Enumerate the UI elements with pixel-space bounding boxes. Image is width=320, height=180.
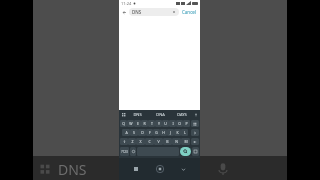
button[interactable]: E <box>134 120 141 127</box>
button[interactable]: R <box>141 120 148 127</box>
button[interactable]: U <box>162 120 169 127</box>
staticText: P <box>185 121 188 126</box>
other: Microphone <box>214 160 232 178</box>
button[interactable]: Numbers <box>191 120 199 127</box>
staticText: Z <box>131 139 134 144</box>
button[interactable]: Cancel <box>181 9 198 15</box>
button[interactable]: Emoji <box>130 147 136 156</box>
button[interactable]: H <box>160 129 167 136</box>
staticText: E <box>137 121 139 126</box>
button[interactable]: Next <box>191 129 199 136</box>
button[interactable]: Q <box>120 120 127 127</box>
staticText: D <box>141 130 144 135</box>
staticText: C <box>148 139 151 144</box>
staticText: DNS <box>58 160 87 179</box>
staticText: B <box>166 139 169 144</box>
staticText: K <box>176 130 179 135</box>
staticText: I <box>172 121 174 126</box>
button[interactable]: Back <box>178 164 188 174</box>
staticText: Y <box>158 121 160 126</box>
button[interactable]: Home <box>154 163 166 175</box>
staticText: DNS <box>133 112 142 117</box>
staticText: N <box>175 139 178 144</box>
button[interactable]: V <box>154 138 163 145</box>
staticText: 11:24 <box>121 1 132 6</box>
staticText: M <box>184 139 188 144</box>
button[interactable]: Y <box>155 120 162 127</box>
button[interactable]: ⇧ <box>120 138 128 145</box>
button[interactable]: Resize keyboard <box>192 147 199 156</box>
button[interactable]: J <box>167 129 174 136</box>
button[interactable]: F <box>146 129 153 136</box>
staticText: O <box>178 121 181 126</box>
button[interactable]: G <box>153 129 160 136</box>
staticText: A <box>125 130 128 135</box>
button[interactable]: M <box>181 138 190 145</box>
button[interactable]: DNS <box>126 110 149 119</box>
staticText: DNA <box>156 112 165 117</box>
staticText: ?123 <box>121 150 128 154</box>
button[interactable]: Search <box>180 147 191 156</box>
staticText: DAYS <box>177 112 187 117</box>
button[interactable]: B <box>163 138 172 145</box>
staticText: R <box>143 121 146 126</box>
staticText: H <box>162 130 165 135</box>
button[interactable]: S <box>130 129 138 136</box>
staticText: S <box>133 130 135 135</box>
button[interactable]: A <box>122 129 130 136</box>
button[interactable]: DAYS <box>171 110 193 119</box>
staticText: DNS <box>132 9 142 15</box>
button[interactable]: N <box>172 138 181 145</box>
staticText: G <box>155 130 158 135</box>
staticText: J <box>170 130 171 135</box>
button[interactable]: C <box>145 138 154 145</box>
button[interactable]: T <box>148 120 155 127</box>
button[interactable]: L <box>181 129 188 136</box>
button[interactable]: W <box>127 120 134 127</box>
button[interactable]: I <box>169 120 176 127</box>
button[interactable]: O <box>176 120 183 127</box>
button[interactable]: Back <box>121 9 128 16</box>
staticText: X <box>139 139 142 144</box>
staticText: U <box>164 121 167 126</box>
button[interactable]: D <box>138 129 146 136</box>
button[interactable]: X <box>136 138 145 145</box>
button[interactable]: P <box>183 120 190 127</box>
button[interactable]: Voice input <box>193 112 198 117</box>
button[interactable]: Z <box>128 138 136 145</box>
staticText: T <box>151 121 153 126</box>
button[interactable]: K <box>174 129 181 136</box>
staticText: V <box>157 139 160 144</box>
button[interactable]: DNA <box>149 110 171 119</box>
staticText: F <box>149 130 151 135</box>
button[interactable]: DNS <box>129 8 179 16</box>
staticText: Q <box>122 121 125 126</box>
button[interactable]: Backspace <box>191 138 199 145</box>
staticText: W <box>129 121 133 126</box>
button[interactable]: Keyboard settings <box>121 112 126 117</box>
staticText: L <box>184 130 186 135</box>
button[interactable]: Recents <box>131 164 141 174</box>
staticText: Cancel <box>182 9 197 15</box>
button[interactable]: ?123 <box>120 147 129 156</box>
staticText: ⇧ <box>123 140 126 144</box>
